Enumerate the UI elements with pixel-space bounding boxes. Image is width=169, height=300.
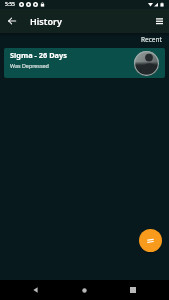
staticText: History [30,15,62,27]
button[interactable]: Home [72,280,96,300]
button[interactable]: Sigma - 26 Days [4,48,165,78]
staticText: Was Depressed [10,62,49,69]
button[interactable]: Add entry [139,229,162,252]
button[interactable]: Recents [121,280,145,300]
staticText: 5:55 [5,1,15,8]
staticText: Recent [141,35,162,44]
button[interactable]: Back [23,280,47,300]
button[interactable]: Menu [147,9,169,33]
staticText: Sigma - 26 Days [10,50,67,60]
button[interactable]: Back [0,9,24,33]
